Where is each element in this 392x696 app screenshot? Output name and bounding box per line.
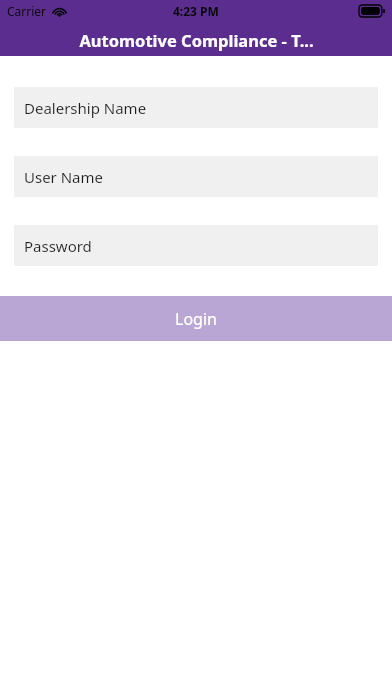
button[interactable]: Dealership Name [14,87,378,128]
staticText: Dealership Name [24,98,147,118]
staticText: Login [175,308,217,330]
staticText: Carrier [7,3,47,19]
staticText: Password [24,236,92,256]
button[interactable]: User Name [14,156,378,197]
staticText: Automotive Compliance - T... [79,29,314,51]
button[interactable]: Login [0,296,392,341]
button[interactable]: Password [14,225,378,266]
staticText: 4:23 PM [173,3,219,19]
staticText: User Name [24,167,104,187]
